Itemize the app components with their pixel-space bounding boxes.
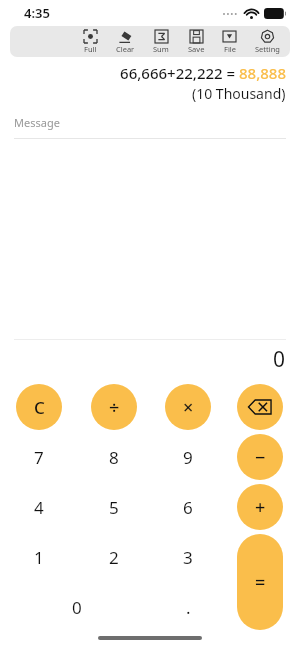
staticText: 3 (183, 546, 193, 569)
button[interactable]: 3 (165, 534, 211, 580)
staticText: 5 (109, 496, 119, 519)
staticText: 0 (72, 596, 82, 619)
staticText: 66,666+22,222 = 88,888 (120, 63, 286, 83)
staticText: 4:35 (24, 4, 50, 22)
staticText: ÷ (109, 395, 120, 420)
staticText: Full (84, 44, 97, 54)
staticText: + (255, 495, 266, 520)
staticText: 8 (109, 446, 119, 469)
button[interactable]: Clear (16, 384, 62, 430)
staticText: Clear (116, 44, 135, 54)
button[interactable]: Sum (151, 30, 171, 54)
staticText: Setting (255, 44, 280, 54)
button[interactable]: Equals (237, 534, 283, 630)
button[interactable]: Full (82, 30, 99, 54)
staticText: C (34, 396, 45, 419)
button[interactable]: 8 (91, 434, 137, 480)
staticText: 9 (183, 446, 193, 469)
button[interactable]: Save (186, 30, 207, 54)
staticText: 1 (34, 546, 44, 569)
staticText: − (255, 445, 266, 470)
button[interactable]: 9 (165, 434, 211, 480)
button[interactable]: Setting (253, 30, 282, 54)
staticText: Message (14, 115, 60, 130)
staticText: 0 (273, 345, 286, 374)
staticText: × (183, 395, 194, 420)
button[interactable]: 1 (16, 534, 62, 580)
button[interactable]: Divide (91, 384, 137, 430)
button[interactable]: 5 (91, 484, 137, 530)
button[interactable]: Clear (114, 30, 137, 54)
staticText: 7 (34, 446, 44, 469)
button[interactable]: 4 (16, 484, 62, 530)
button[interactable]: 6 (165, 484, 211, 530)
staticText: Sum (153, 44, 169, 54)
staticText: . (186, 596, 191, 619)
staticText: (10 Thousand) (192, 84, 286, 103)
button[interactable]: 2 (91, 534, 137, 580)
button[interactable]: 7 (16, 434, 62, 480)
button[interactable]: . (165, 584, 211, 630)
staticText: File (224, 44, 236, 54)
staticText: 2 (109, 546, 119, 569)
button[interactable]: Multiply (165, 384, 211, 430)
button[interactable]: Plus (237, 484, 283, 530)
button[interactable]: Backspace (237, 384, 283, 430)
staticText: Save (188, 44, 205, 54)
staticText: 6 (183, 496, 193, 519)
button[interactable]: Minus (237, 434, 283, 480)
button[interactable]: File (221, 30, 238, 54)
button[interactable]: 0 (54, 584, 100, 630)
staticText: = (255, 570, 266, 595)
staticText: 4 (34, 496, 44, 519)
